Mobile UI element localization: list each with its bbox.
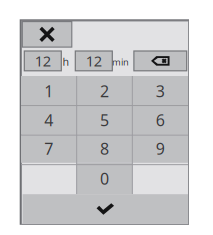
- button[interactable]: Backspace: [134, 51, 187, 71]
- button[interactable]: 5: [77, 106, 132, 134]
- button[interactable]: 3: [132, 76, 188, 106]
- staticText: 0: [100, 168, 109, 189]
- staticText: 1: [44, 80, 53, 101]
- button[interactable]: 7: [21, 134, 77, 163]
- staticText: 12: [35, 51, 51, 71]
- button[interactable]: 0: [77, 163, 132, 194]
- button[interactable]: 1: [21, 76, 77, 106]
- staticText: 3: [156, 80, 165, 101]
- staticText: 9: [156, 138, 165, 159]
- staticText: 4: [44, 109, 53, 131]
- staticText: 8: [100, 138, 109, 159]
- staticText: 2: [100, 80, 109, 101]
- staticText: 6: [156, 109, 165, 131]
- staticText: 5: [100, 109, 109, 131]
- button[interactable]: Confirm: [23, 194, 188, 224]
- button[interactable]: 9: [132, 134, 188, 163]
- staticText: min: [112, 56, 129, 68]
- staticText: 7: [44, 138, 53, 159]
- button[interactable]: 4: [21, 106, 77, 134]
- button[interactable]: 6: [132, 106, 188, 134]
- button[interactable]: 8: [77, 134, 132, 163]
- staticText: 12: [86, 51, 102, 71]
- staticText: h: [62, 54, 69, 69]
- button[interactable]: 2: [77, 76, 132, 106]
- button[interactable]: Close: [22, 22, 72, 47]
